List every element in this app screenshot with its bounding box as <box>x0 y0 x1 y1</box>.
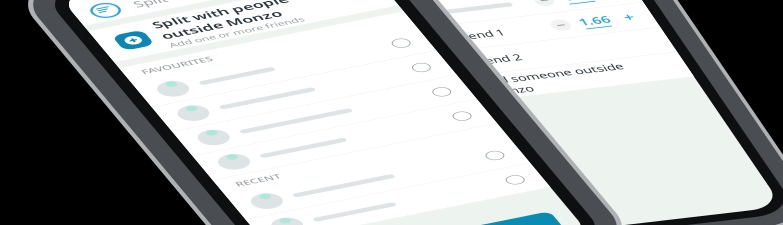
staticText: Split <box>98 59 153 95</box>
staticText: Add one or more friends <box>100 206 327 225</box>
staticText: outside Monzo <box>100 169 301 206</box>
button[interactable]: Split with people <box>0 128 480 225</box>
staticText: Split with people <box>100 131 327 169</box>
